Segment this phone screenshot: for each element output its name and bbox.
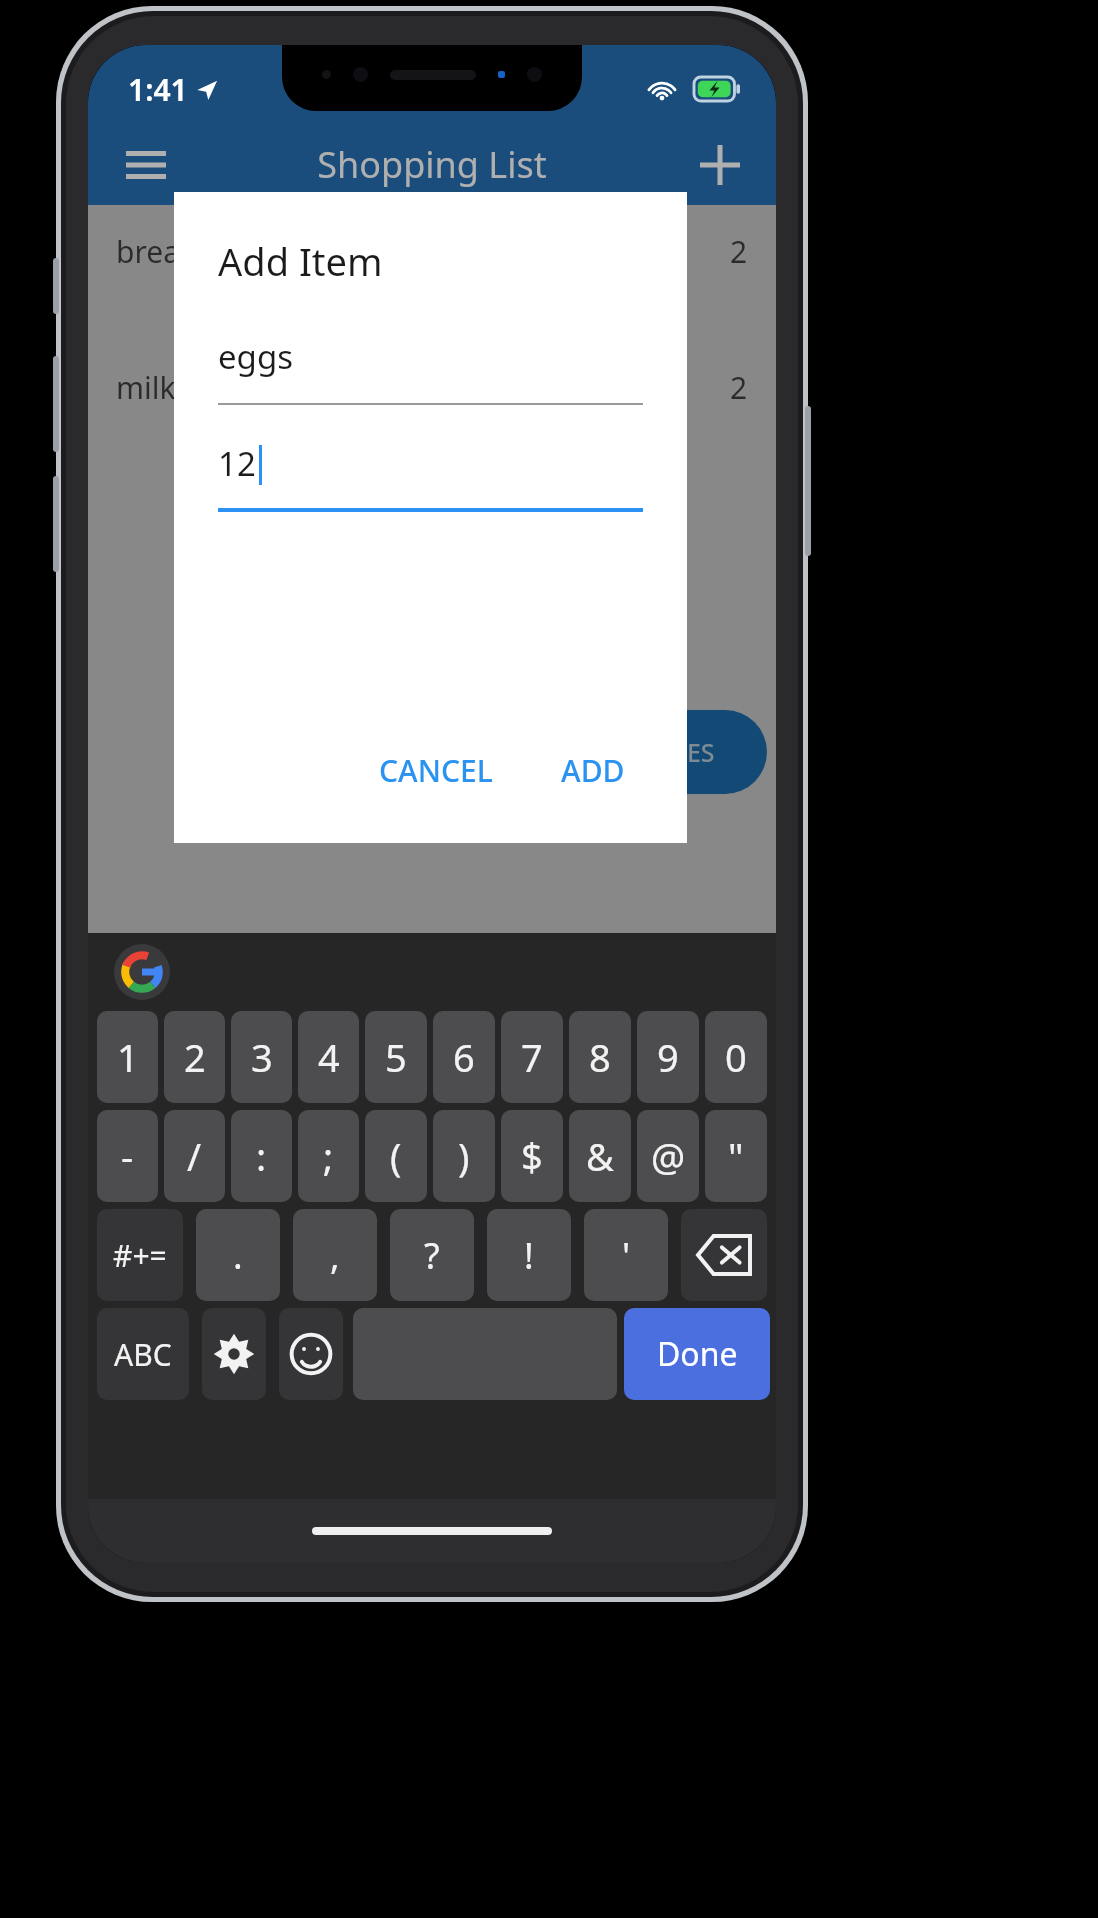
staticText: FIND STORES bbox=[558, 735, 715, 769]
button[interactable]: 2 bbox=[164, 1011, 225, 1103]
staticText: - bbox=[121, 1130, 134, 1182]
button[interactable]: Done bbox=[624, 1308, 770, 1400]
button[interactable]: Backspace bbox=[681, 1209, 767, 1301]
button[interactable]: 1 bbox=[97, 1011, 158, 1103]
staticText: 2 bbox=[730, 231, 748, 272]
staticText: / bbox=[187, 1130, 202, 1182]
staticText: ? bbox=[424, 1231, 440, 1280]
staticText: ( bbox=[390, 1130, 402, 1182]
staticText: CANCEL bbox=[379, 750, 493, 791]
button[interactable]: 4 bbox=[298, 1011, 359, 1103]
staticText: 8 bbox=[589, 1031, 611, 1083]
staticText: 7 bbox=[521, 1031, 543, 1083]
staticText: eggs bbox=[218, 334, 294, 379]
button[interactable]: 9 bbox=[637, 1011, 699, 1103]
button[interactable]: 5 bbox=[365, 1011, 427, 1103]
button[interactable]: 7 bbox=[501, 1011, 563, 1103]
button[interactable]: ADD bbox=[545, 738, 641, 803]
button[interactable]: 6 bbox=[433, 1011, 495, 1103]
button[interactable]: 0 bbox=[705, 1011, 767, 1103]
staticText: : bbox=[256, 1130, 267, 1182]
staticText: 12 bbox=[218, 441, 256, 486]
staticText: bread bbox=[116, 231, 199, 272]
staticText: @ bbox=[651, 1130, 686, 1182]
button[interactable]: milk bbox=[88, 341, 776, 433]
staticText: #+= bbox=[113, 1235, 167, 1276]
staticText: . bbox=[233, 1231, 243, 1280]
button[interactable]: . bbox=[196, 1209, 280, 1301]
button[interactable]: ( bbox=[365, 1110, 427, 1202]
staticText: ! bbox=[524, 1231, 534, 1280]
button[interactable]: $ bbox=[501, 1110, 563, 1202]
staticText: & bbox=[586, 1130, 614, 1182]
staticText: milk bbox=[116, 367, 176, 408]
button[interactable]: - bbox=[97, 1110, 158, 1202]
button[interactable]: Add item bbox=[686, 131, 754, 199]
button[interactable]: ABC bbox=[97, 1308, 189, 1400]
staticText: 1:41 bbox=[128, 69, 188, 110]
staticText: 1 bbox=[117, 1031, 139, 1083]
button[interactable]: bread bbox=[88, 205, 776, 297]
button[interactable]: CANCEL bbox=[363, 738, 509, 803]
button[interactable]: FIND STORES bbox=[505, 710, 767, 794]
staticText: 4 bbox=[318, 1031, 340, 1083]
button[interactable]: ' bbox=[584, 1209, 668, 1301]
staticText: 5 bbox=[385, 1031, 407, 1083]
staticText: $ bbox=[521, 1130, 543, 1182]
button[interactable]: Open navigation menu bbox=[112, 131, 180, 199]
button[interactable]: : bbox=[231, 1110, 292, 1202]
staticText: , bbox=[330, 1231, 340, 1280]
staticText: " bbox=[728, 1130, 744, 1182]
button[interactable]: " bbox=[705, 1110, 767, 1202]
button[interactable]: ) bbox=[433, 1110, 495, 1202]
button[interactable]: Keyboard settings bbox=[202, 1308, 266, 1400]
button[interactable]: / bbox=[164, 1110, 225, 1202]
staticText: ADD bbox=[561, 750, 625, 791]
staticText: 0 bbox=[725, 1031, 747, 1083]
button[interactable]: @ bbox=[637, 1110, 699, 1202]
staticText: Shopping List bbox=[317, 140, 547, 189]
button[interactable]: 3 bbox=[231, 1011, 292, 1103]
staticText: ABC bbox=[114, 1334, 172, 1375]
staticText: 9 bbox=[657, 1031, 679, 1083]
button[interactable]: 8 bbox=[569, 1011, 631, 1103]
button[interactable]: #+= bbox=[97, 1209, 183, 1301]
staticText: 2 bbox=[730, 367, 748, 408]
button[interactable]: eggs bbox=[218, 334, 643, 405]
button[interactable]: Emoji bbox=[279, 1308, 343, 1400]
button[interactable]: ; bbox=[298, 1110, 359, 1202]
staticText: ; bbox=[323, 1130, 334, 1182]
staticText: Done bbox=[657, 1332, 738, 1376]
staticText: 2 bbox=[184, 1031, 206, 1083]
button[interactable]: ? bbox=[390, 1209, 474, 1301]
staticText: 6 bbox=[453, 1031, 475, 1083]
staticText: Add Item bbox=[218, 235, 383, 287]
button[interactable]: ! bbox=[487, 1209, 571, 1301]
staticText: ' bbox=[622, 1231, 631, 1280]
staticText: ) bbox=[458, 1130, 470, 1182]
staticText: 3 bbox=[251, 1031, 273, 1083]
button[interactable]: 12 bbox=[218, 441, 643, 512]
button[interactable]: & bbox=[569, 1110, 631, 1202]
button[interactable]: , bbox=[293, 1209, 377, 1301]
button[interactable]: Google search bbox=[114, 944, 170, 1000]
